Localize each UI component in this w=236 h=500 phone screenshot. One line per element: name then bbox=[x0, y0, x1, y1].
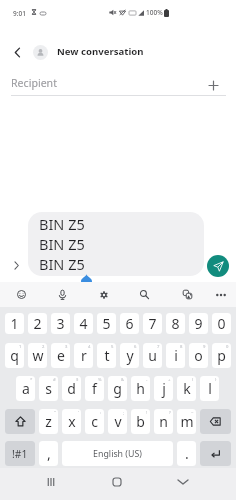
button[interactable]: Home bbox=[102, 467, 132, 497]
button[interactable]: w bbox=[28, 343, 47, 368]
staticText: 4 bbox=[88, 344, 91, 350]
button[interactable]: m bbox=[177, 409, 196, 434]
staticText: r bbox=[81, 346, 87, 365]
staticText: k bbox=[183, 379, 191, 398]
button[interactable]: 6 bbox=[120, 313, 139, 334]
staticText: h bbox=[136, 379, 145, 398]
staticText: y bbox=[126, 346, 134, 365]
staticText: " bbox=[54, 410, 56, 416]
staticText: BIN Z5 BIN Z5 BIN Z5 bbox=[39, 214, 85, 274]
staticText: 9 bbox=[203, 344, 206, 350]
staticText: 3 bbox=[65, 344, 68, 350]
button[interactable]: More options bbox=[210, 282, 232, 307]
button[interactable]: !#1 bbox=[5, 441, 35, 466]
staticText: o bbox=[194, 346, 203, 365]
button[interactable]: t bbox=[97, 343, 116, 368]
button[interactable]: Show more options bbox=[5, 254, 27, 276]
button[interactable]: z bbox=[39, 409, 58, 434]
button[interactable]: BIN Z5 BIN Z5 BIN Z5 bbox=[28, 212, 204, 276]
button[interactable]: . bbox=[177, 441, 196, 466]
button[interactable]: 0 bbox=[212, 313, 231, 334]
button[interactable]: x bbox=[62, 409, 81, 434]
staticText: Recipient bbox=[11, 76, 57, 90]
button[interactable]: s bbox=[39, 376, 58, 401]
staticText: 8 bbox=[171, 314, 180, 333]
button[interactable]: Contact bbox=[33, 45, 48, 60]
staticText: g bbox=[113, 379, 122, 398]
button[interactable]: h bbox=[131, 376, 150, 401]
button[interactable]: k bbox=[177, 376, 196, 401]
staticText: % bbox=[98, 377, 102, 383]
button[interactable]: n bbox=[154, 409, 173, 434]
button[interactable]: Shift bbox=[5, 409, 35, 434]
staticText: ( bbox=[192, 377, 194, 383]
staticText: 1 bbox=[19, 344, 22, 350]
button[interactable]: Settings bbox=[93, 282, 115, 307]
button[interactable]: i bbox=[166, 343, 185, 368]
button[interactable]: Send bbox=[207, 255, 229, 277]
button[interactable]: Voice input bbox=[51, 282, 73, 307]
button[interactable]: Recipient bbox=[0, 68, 236, 96]
button[interactable]: v bbox=[108, 409, 127, 434]
staticText: m bbox=[180, 412, 194, 431]
staticText: , bbox=[47, 444, 51, 463]
staticText: f bbox=[92, 379, 97, 398]
button[interactable]: f bbox=[85, 376, 104, 401]
button[interactable]: Emoji bbox=[10, 282, 32, 307]
staticText: $ bbox=[76, 377, 79, 383]
button[interactable]: 7 bbox=[143, 313, 162, 334]
staticText: 8 bbox=[180, 344, 183, 350]
button[interactable]: y bbox=[120, 343, 139, 368]
button[interactable]: English (US) bbox=[62, 441, 173, 466]
button[interactable]: Add recipient bbox=[203, 75, 223, 95]
button[interactable]: l bbox=[200, 376, 219, 401]
staticText: x bbox=[68, 412, 76, 431]
button[interactable]: g bbox=[108, 376, 127, 401]
button[interactable]: o bbox=[189, 343, 208, 368]
staticText: c bbox=[91, 412, 98, 431]
staticText: New conversation bbox=[57, 45, 144, 58]
button[interactable]: 9 bbox=[189, 313, 208, 334]
button[interactable]: r bbox=[74, 343, 93, 368]
button[interactable]: 3 bbox=[51, 313, 70, 334]
staticText: ' bbox=[78, 410, 79, 416]
button[interactable]: e bbox=[51, 343, 70, 368]
staticText: z bbox=[45, 412, 52, 431]
staticText: 3 bbox=[56, 314, 65, 333]
staticText: 0 bbox=[217, 314, 226, 333]
staticText: # bbox=[53, 377, 56, 383]
button[interactable]: 5 bbox=[97, 313, 116, 334]
button[interactable]: Backspace bbox=[200, 409, 231, 434]
staticText: n bbox=[159, 412, 168, 431]
staticText: a bbox=[22, 379, 30, 398]
button[interactable]: 2 bbox=[28, 313, 47, 334]
button[interactable]: Recent apps bbox=[36, 467, 66, 497]
button[interactable]: Enter bbox=[200, 441, 231, 466]
button[interactable]: Back bbox=[168, 467, 198, 497]
button[interactable]: u bbox=[143, 343, 162, 368]
button[interactable]: , bbox=[39, 441, 58, 466]
staticText: l bbox=[208, 379, 212, 398]
button[interactable]: d bbox=[62, 376, 81, 401]
staticText: & bbox=[121, 377, 125, 383]
staticText: s bbox=[45, 379, 52, 398]
staticText: u bbox=[148, 346, 157, 365]
staticText: 7 bbox=[157, 344, 160, 350]
button[interactable]: Stickers bbox=[176, 282, 198, 307]
button[interactable]: Back bbox=[5, 40, 29, 64]
staticText: ; bbox=[123, 410, 125, 416]
staticText: 2 bbox=[42, 344, 45, 350]
staticText: 9:01 bbox=[13, 9, 26, 18]
staticText: 1 bbox=[10, 314, 19, 333]
button[interactable]: j bbox=[154, 376, 173, 401]
button[interactable]: b bbox=[131, 409, 150, 434]
button[interactable]: q bbox=[5, 343, 24, 368]
button[interactable]: 8 bbox=[166, 313, 185, 334]
button[interactable]: Search bbox=[133, 282, 155, 307]
button[interactable]: a bbox=[16, 376, 35, 401]
button[interactable]: 1 bbox=[5, 313, 24, 334]
button[interactable]: p bbox=[212, 343, 231, 368]
button[interactable]: 4 bbox=[74, 313, 93, 334]
button[interactable]: c bbox=[85, 409, 104, 434]
staticText: p bbox=[217, 346, 226, 365]
